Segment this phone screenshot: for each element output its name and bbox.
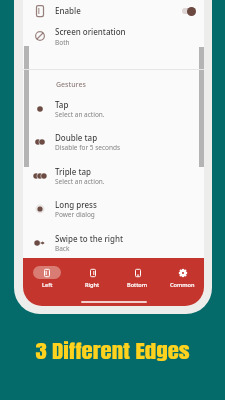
staticText: Gestures [56, 80, 86, 90]
button[interactable]: Long press [23, 195, 204, 223]
staticText: Select an action. [55, 110, 105, 119]
button[interactable]: Screen orientation [23, 24, 204, 48]
staticText: Select an action. [55, 177, 105, 186]
button[interactable]: Double tap [23, 128, 204, 156]
staticText: Tap [55, 99, 69, 110]
button[interactable]: Enable [23, 0, 204, 21]
button[interactable]: Bottom [115, 264, 160, 298]
button[interactable]: Enable [182, 6, 196, 16]
staticText: Left [42, 281, 53, 289]
staticText: Screen orientation [55, 26, 126, 37]
staticText: Right [85, 281, 100, 289]
staticText: Triple tap [55, 166, 92, 177]
staticText: Swipe to the right [55, 233, 124, 244]
button[interactable]: Tap [23, 95, 204, 123]
staticText: Disable for 5 seconds [55, 143, 121, 152]
button[interactable]: Triple tap [23, 162, 204, 190]
staticText: Power dialog [55, 210, 95, 219]
button[interactable]: Right [70, 264, 115, 298]
button[interactable]: Swipe to the right [23, 229, 204, 257]
button[interactable]: Left [24, 264, 70, 298]
staticText: Back [55, 244, 70, 253]
staticText: 3 Different Edges [0, 337, 225, 366]
staticText: Bottom [127, 281, 148, 289]
staticText: Common [170, 281, 195, 289]
button[interactable]: Common [160, 264, 204, 298]
staticText: Long press [55, 199, 97, 210]
staticText: Both [55, 38, 70, 47]
staticText: Enable [55, 5, 81, 16]
staticText: Double tap [55, 132, 98, 143]
